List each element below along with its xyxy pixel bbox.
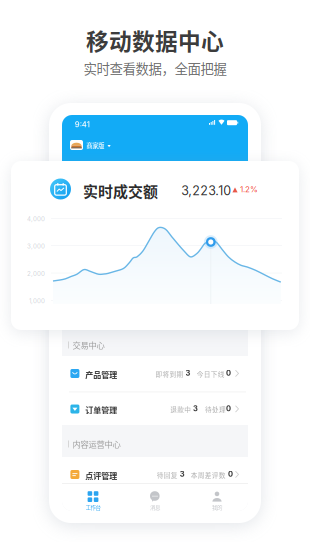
staticText: 工作台 [85, 503, 100, 511]
staticText: 1,000 [29, 297, 45, 305]
button[interactable]: 点评管理 [62, 457, 248, 492]
staticText: 今日下线 [197, 369, 225, 379]
staticText: 0 [226, 404, 231, 413]
button[interactable]: 工作台 [62, 483, 124, 511]
staticText: 0 [228, 470, 233, 479]
staticText: 内容运营中心 [72, 438, 120, 450]
staticText: 3,223.10 [181, 183, 231, 198]
staticText: 商家版 [86, 141, 104, 150]
staticText: 交易中心 [72, 339, 104, 351]
staticText: 订单管理 [85, 404, 117, 416]
staticText: 9:41 [75, 120, 90, 129]
staticText: 1.2% [240, 185, 258, 194]
staticText: 3,000 [27, 243, 45, 250]
staticText: 实时成交额 [83, 180, 158, 202]
staticText: 本周差评数 [191, 470, 226, 480]
button[interactable]: 产品管理 [62, 356, 248, 391]
staticText: 产品管理 [85, 369, 117, 380]
staticText: 0 [226, 369, 231, 378]
staticText: 待处理 [205, 405, 226, 414]
button[interactable]: 订单管理 [62, 391, 248, 426]
staticText: 实时查看数据，全面把握 [83, 58, 226, 78]
staticText: 待回复 [157, 470, 178, 480]
staticText: 即将到期 [155, 369, 183, 379]
staticText: 点评管理 [85, 470, 117, 481]
staticText: 消息 [150, 503, 160, 511]
staticText: 退款中 [170, 405, 191, 414]
staticText: 2,000 [27, 270, 45, 277]
button[interactable]: 我的 [186, 483, 248, 511]
staticText: 3 [193, 404, 198, 413]
staticText: 我的 [212, 503, 222, 511]
staticText: 3 [186, 369, 191, 378]
staticText: 移动数据中心 [86, 24, 224, 57]
button[interactable]: 消息 [124, 483, 186, 511]
staticText: 4,000 [27, 215, 45, 223]
staticText: 3 [180, 470, 185, 479]
